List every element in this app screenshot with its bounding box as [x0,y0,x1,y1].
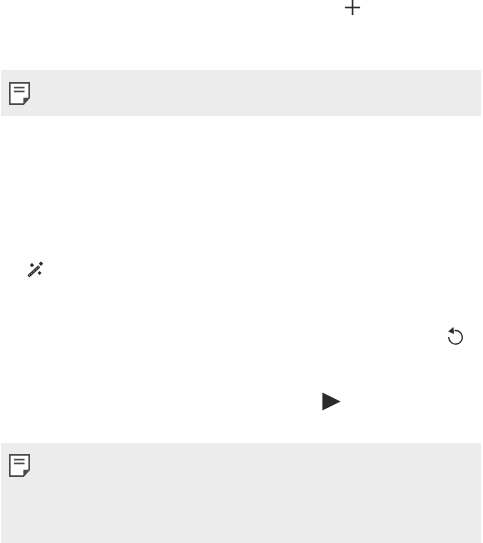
button[interactable]: Play [322,392,341,411]
button[interactable]: Note [1,443,481,543]
button[interactable]: Magic edit [27,261,44,278]
button[interactable]: Note [1,70,481,116]
button[interactable]: Add [341,0,364,19]
button[interactable]: Undo [446,326,465,345]
